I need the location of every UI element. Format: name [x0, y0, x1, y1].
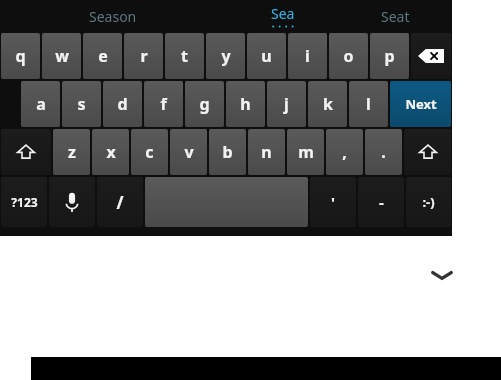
button[interactable]: Season	[0, 0, 226, 32]
button[interactable]: Seat	[339, 0, 452, 32]
button[interactable]: Next	[390, 81, 451, 127]
staticText: Next	[405, 95, 437, 113]
staticText: n	[261, 141, 272, 163]
button[interactable]: f	[144, 81, 183, 127]
staticText: c	[145, 141, 154, 163]
staticText: y	[221, 45, 231, 67]
button[interactable]: a	[21, 81, 60, 127]
staticText: z	[68, 141, 76, 163]
staticText: w	[55, 45, 69, 67]
button[interactable]: z	[53, 129, 90, 175]
button[interactable]: ?123	[1, 177, 47, 227]
button[interactable]: j	[267, 81, 306, 127]
button[interactable]: Shift	[1, 129, 51, 175]
staticText: ?123	[11, 194, 38, 210]
staticText: /	[116, 191, 124, 214]
button[interactable]: Sea	[226, 0, 339, 32]
staticText: .	[381, 141, 386, 163]
button[interactable]: m	[287, 129, 324, 175]
button[interactable]: '	[310, 177, 356, 227]
staticText: p	[384, 45, 395, 67]
staticText: Sea	[271, 4, 295, 23]
button[interactable]: n	[248, 129, 285, 175]
button[interactable]: s	[62, 81, 101, 127]
button[interactable]: h	[226, 81, 265, 127]
staticText: o	[343, 45, 354, 67]
staticText: Seat	[381, 7, 410, 26]
button[interactable]: d	[103, 81, 142, 127]
button[interactable]: r	[124, 33, 163, 79]
button[interactable]: g	[185, 81, 224, 127]
staticText: a	[36, 93, 46, 115]
button[interactable]: y	[206, 33, 245, 79]
button[interactable]: v	[170, 129, 207, 175]
button[interactable]: Shift	[404, 129, 451, 175]
button[interactable]: q	[1, 33, 40, 79]
staticText: f	[160, 93, 167, 115]
button[interactable]: Voice input	[49, 177, 95, 227]
staticText: b	[222, 141, 233, 163]
staticText: u	[261, 45, 272, 67]
button[interactable]: b	[209, 129, 246, 175]
button[interactable]: .	[365, 129, 402, 175]
staticText: g	[199, 93, 210, 115]
staticText: i	[305, 45, 310, 67]
button[interactable]: -	[358, 177, 404, 227]
staticText: Season	[89, 7, 137, 26]
staticText: d	[117, 93, 128, 115]
staticText: q	[15, 45, 26, 67]
button[interactable]: l	[349, 81, 388, 127]
staticText: m	[298, 141, 314, 163]
button[interactable]	[145, 177, 308, 227]
staticText: e	[98, 45, 108, 67]
staticText: ,	[342, 141, 347, 163]
staticText: l	[366, 93, 371, 115]
button[interactable]: o	[329, 33, 368, 79]
staticText: -	[379, 192, 384, 212]
staticText: k	[323, 93, 333, 115]
button[interactable]: c	[131, 129, 168, 175]
staticText: r	[140, 45, 148, 67]
staticText: j	[284, 93, 289, 115]
staticText: s	[77, 93, 86, 115]
button[interactable]: k	[308, 81, 347, 127]
button[interactable]: i	[288, 33, 327, 79]
staticText: h	[240, 93, 251, 115]
button[interactable]: u	[247, 33, 286, 79]
staticText: '	[331, 192, 335, 212]
staticText: x	[106, 141, 116, 163]
button[interactable]: p	[370, 33, 409, 79]
staticText: t	[181, 45, 188, 67]
button[interactable]: t	[165, 33, 204, 79]
button[interactable]: ,	[326, 129, 363, 175]
button[interactable]: w	[42, 33, 81, 79]
button[interactable]: Hide keyboard	[428, 264, 456, 286]
button[interactable]: e	[83, 33, 122, 79]
button[interactable]: :-)	[406, 177, 451, 227]
button[interactable]: Backspace	[411, 33, 451, 79]
staticText: v	[184, 141, 194, 163]
staticText: :-)	[422, 193, 435, 211]
button[interactable]: x	[92, 129, 129, 175]
button[interactable]: /	[97, 177, 143, 227]
